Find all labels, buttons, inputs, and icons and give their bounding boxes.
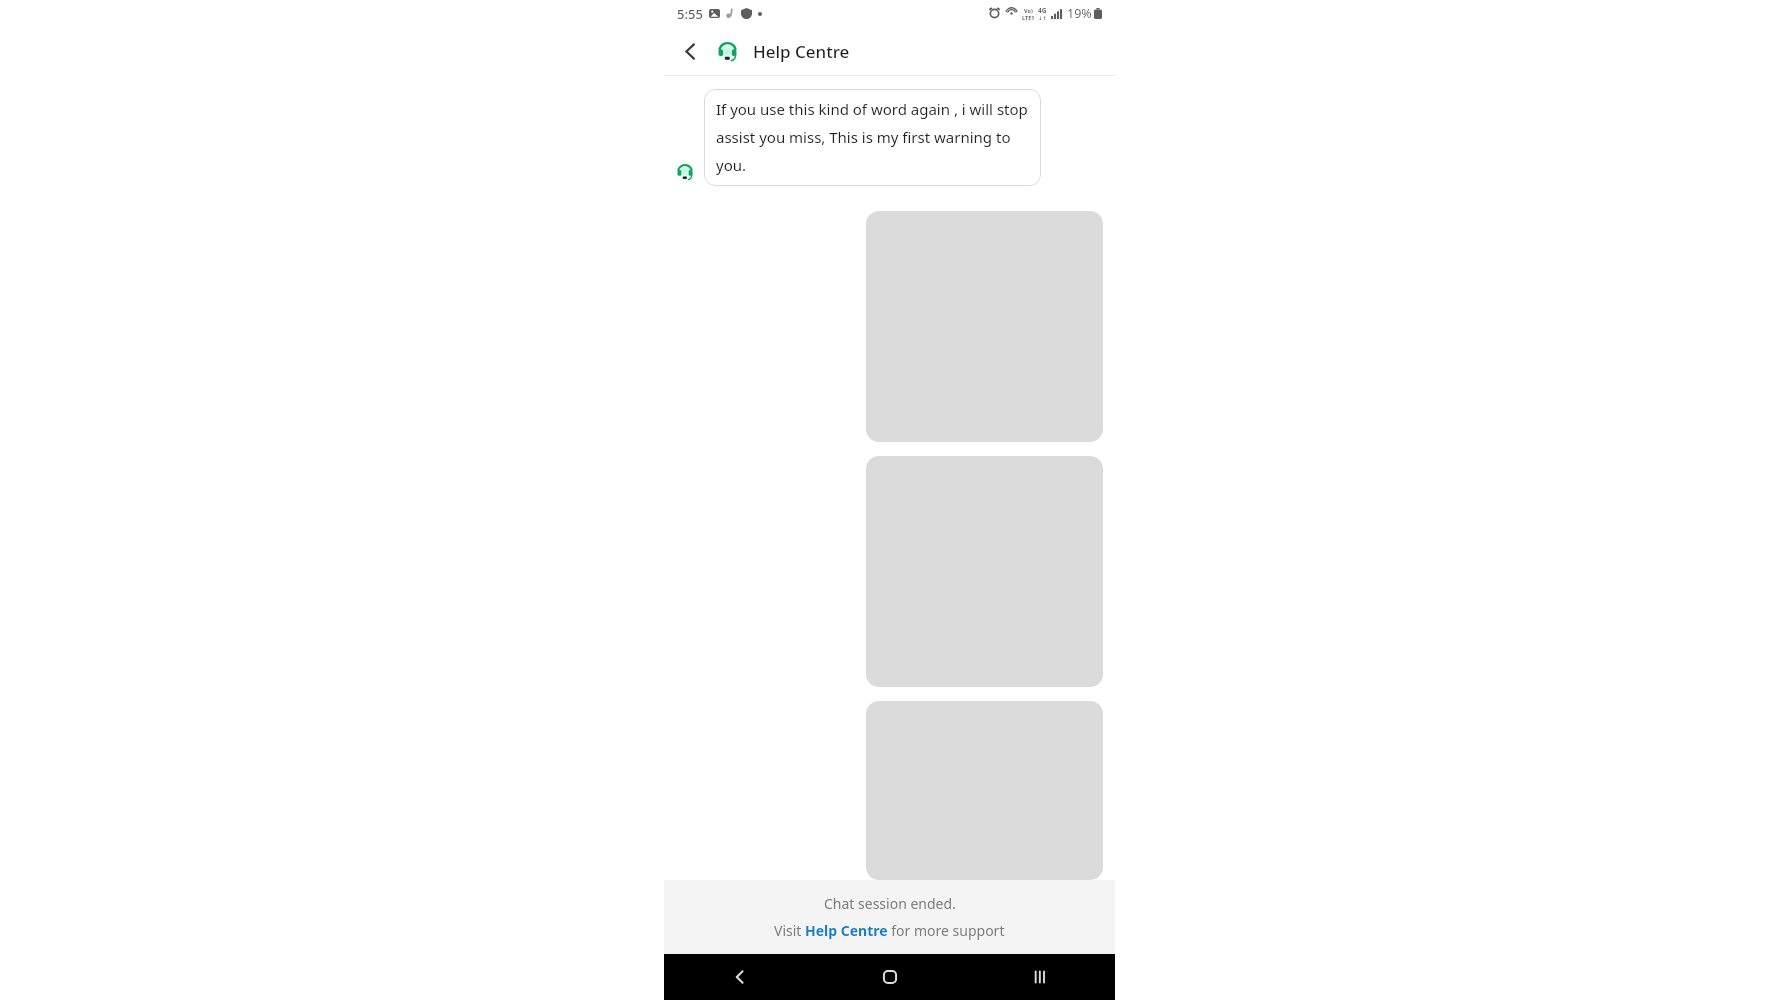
button[interactable]: Back — [664, 954, 815, 1000]
button[interactable]: Back — [673, 34, 707, 68]
staticText: Vo) — [1024, 7, 1033, 14]
staticText: LTE1 — [1022, 14, 1035, 21]
staticText: Chat session ended. — [824, 894, 956, 913]
button[interactable]: Home — [815, 954, 965, 1000]
staticText: Help Centre — [753, 40, 850, 63]
staticText: Visit Help Centre for more support — [774, 921, 1005, 940]
button[interactable]: If you use this kind of word again , i w… — [704, 89, 1041, 186]
staticText: 5:55 — [677, 5, 703, 23]
staticText: If you use this kind of word again , i w… — [716, 99, 1029, 176]
button[interactable]: Recent apps — [965, 954, 1115, 1000]
staticText: ↓↑ — [1038, 15, 1047, 21]
staticText: 4G — [1038, 6, 1047, 15]
staticText: 19% — [1067, 5, 1092, 22]
button[interactable]: Visit Help Centre for more support — [774, 921, 1005, 940]
